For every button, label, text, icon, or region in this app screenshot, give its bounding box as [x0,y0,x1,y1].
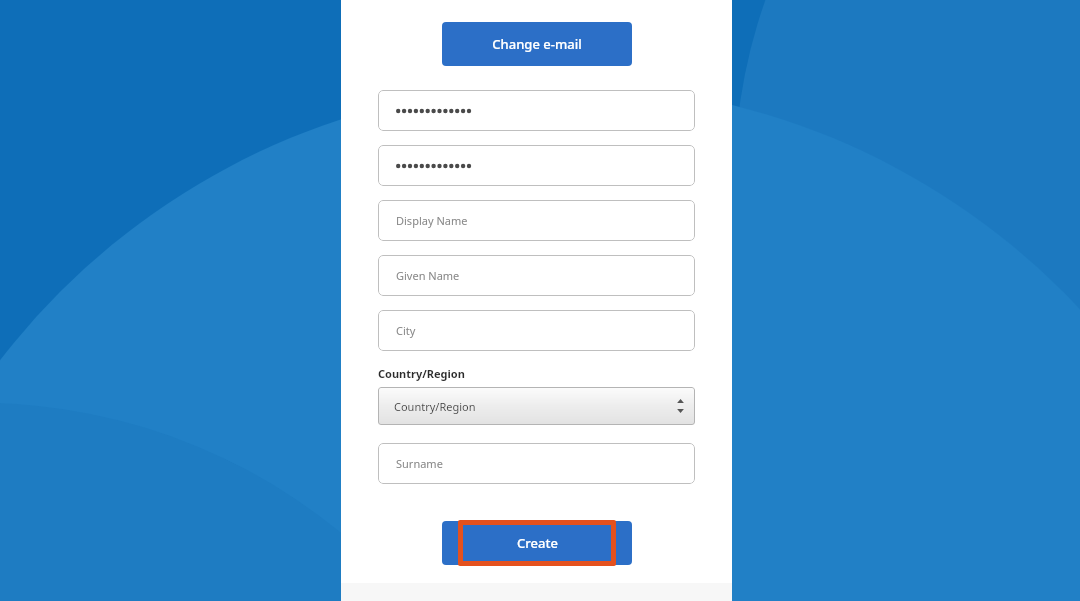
staticText: Country/Region [394,399,476,414]
staticText: Surname [396,456,443,471]
button[interactable]: Country/Region [378,387,695,425]
button[interactable]: Given Name [378,255,695,296]
staticText: Country/Region [378,366,465,381]
staticText: Change e-mail [492,35,582,53]
button[interactable]: Surname [378,443,695,484]
button[interactable]: Password [378,145,695,186]
staticText: Display Name [396,213,468,228]
button[interactable]: Display Name [378,200,695,241]
button[interactable]: Change e-mail [442,22,632,66]
button[interactable]: City [378,310,695,351]
staticText: Given Name [396,268,460,283]
button[interactable]: Password [378,90,695,131]
button[interactable]: Create [442,521,632,565]
staticText: Create [517,534,558,552]
staticText: City [396,323,416,338]
